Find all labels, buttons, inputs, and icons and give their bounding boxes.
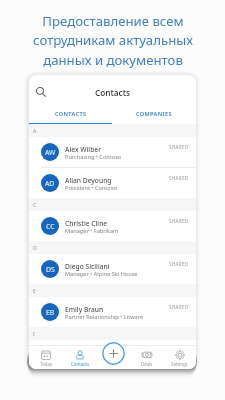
- staticText: AW: [45, 148, 56, 157]
- staticText: COMPANIES: [136, 110, 172, 118]
- button[interactable]: Settings: [163, 350, 196, 367]
- button[interactable]: DS: [29, 254, 196, 284]
- staticText: Diego Siciliani: [65, 262, 110, 271]
- staticText: I: [33, 330, 35, 337]
- staticText: CC: [46, 222, 55, 231]
- staticText: E: [33, 287, 36, 294]
- staticText: President • Contoso: [65, 184, 117, 192]
- staticText: C: [33, 201, 37, 208]
- staticText: EB: [46, 308, 55, 317]
- staticText: Settings: [171, 361, 188, 367]
- button[interactable]: Add: [102, 342, 125, 365]
- staticText: Allan Deyoung: [65, 176, 112, 185]
- staticText: Contacts: [95, 87, 131, 98]
- staticText: Alex Wilber: [65, 145, 101, 154]
- button[interactable]: Contacts: [63, 350, 97, 367]
- staticText: Emily Braun: [65, 305, 104, 314]
- staticText: SHARED: [169, 304, 189, 310]
- staticText: SHARED: [169, 261, 189, 267]
- staticText: SHARED: [169, 175, 189, 181]
- button[interactable]: CONTACTS: [29, 105, 112, 124]
- button[interactable]: EB: [29, 297, 196, 327]
- staticText: Manager • Alpine Ski House: [65, 270, 138, 278]
- staticText: DS: [46, 265, 55, 274]
- staticText: Предоставление всем сотрудникам актуальн…: [33, 12, 193, 69]
- staticText: Contacts: [71, 361, 89, 367]
- staticText: Partner Relationship • Litware: [65, 313, 144, 321]
- staticText: A: [33, 127, 37, 134]
- staticText: Christie Cline: [65, 219, 108, 228]
- button[interactable]: AD: [29, 168, 196, 198]
- staticText: Purchasing • Contoso: [65, 153, 122, 161]
- button[interactable]: Today: [29, 350, 63, 367]
- button[interactable]: COMPANIES: [112, 105, 196, 124]
- button[interactable]: CC: [29, 211, 196, 241]
- staticText: SHARED: [169, 218, 189, 224]
- staticText: CONTACTS: [55, 110, 87, 118]
- staticText: Manager • Fabrikam: [65, 227, 119, 235]
- button[interactable]: Search: [32, 83, 50, 101]
- button[interactable]: AW: [29, 137, 196, 167]
- staticText: D: [33, 244, 37, 251]
- staticText: AD: [45, 179, 55, 188]
- staticText: Today: [40, 361, 53, 367]
- staticText: Deals: [141, 361, 153, 367]
- staticText: SHARED: [169, 144, 189, 150]
- button[interactable]: Deals: [130, 350, 163, 367]
